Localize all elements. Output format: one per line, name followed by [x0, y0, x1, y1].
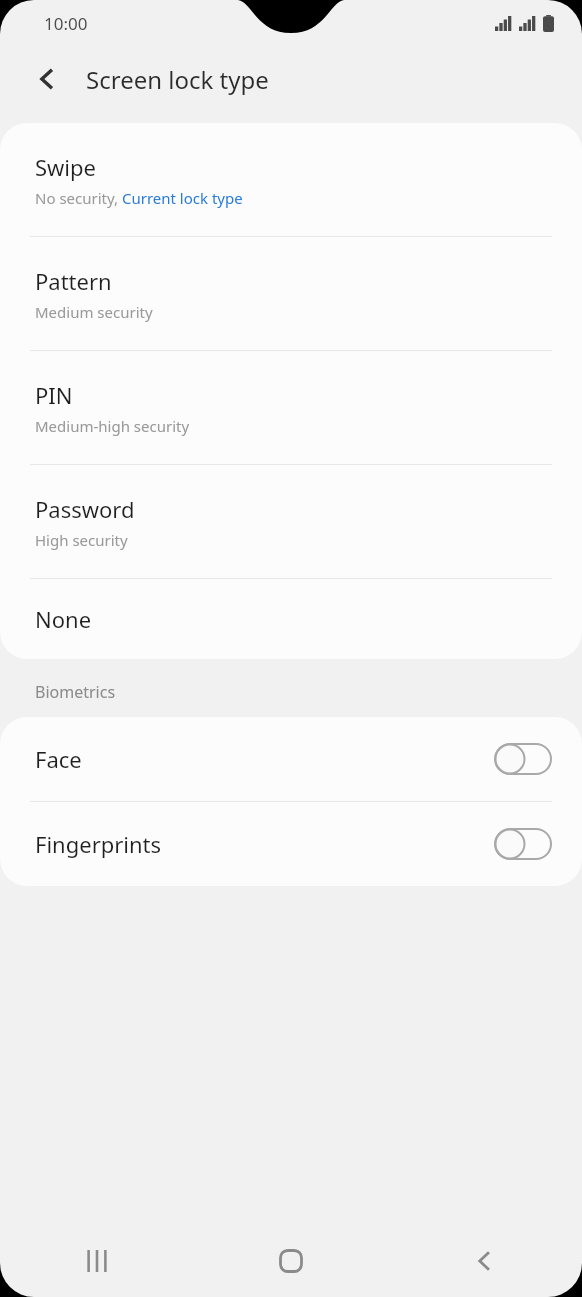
staticText: Pattern	[35, 266, 112, 296]
button[interactable]: Pattern	[0, 237, 582, 350]
staticText: Screen lock type	[86, 63, 269, 96]
staticText: Fingerprints	[35, 829, 494, 859]
button[interactable]: Back	[20, 51, 76, 107]
button[interactable]: Back	[388, 1225, 582, 1297]
staticText: No security, Current lock type	[35, 188, 243, 208]
staticText: PIN	[35, 380, 73, 410]
staticText: 10:00	[44, 12, 88, 35]
button[interactable]: Fingerprints	[0, 802, 582, 886]
button[interactable]: Face	[0, 717, 582, 801]
button[interactable]: Recent apps	[0, 1225, 194, 1297]
button[interactable]: Password	[0, 465, 582, 578]
staticText: Face	[35, 744, 494, 774]
staticText: Biometrics	[35, 681, 116, 703]
staticText: Swipe	[35, 152, 96, 182]
staticText: Password	[35, 494, 135, 524]
button[interactable]: Home	[194, 1225, 388, 1297]
staticText: High security	[35, 530, 128, 550]
button[interactable]: Swipe	[0, 123, 582, 236]
button[interactable]: PIN	[0, 351, 582, 464]
staticText: Medium security	[35, 302, 153, 322]
staticText: None	[35, 604, 92, 634]
staticText: Medium-high security	[35, 416, 190, 436]
button[interactable]: None	[0, 579, 582, 659]
